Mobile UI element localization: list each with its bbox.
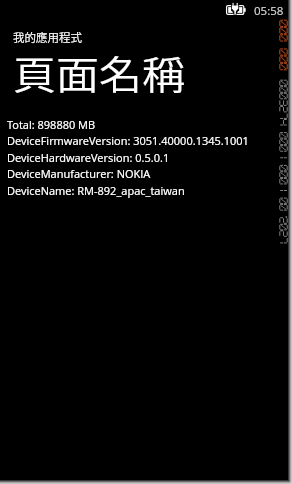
staticText: 頁面名稱 — [13, 44, 185, 100]
staticText: 05:58 — [254, 3, 284, 19]
staticText: Total: 898880 MB — [7, 117, 96, 132]
staticText: DeviceManufacturer: NOKIA — [7, 166, 151, 181]
staticText: DeviceFirmwareVersion: 3051.40000.1345.1… — [7, 133, 249, 148]
other: Battery charging — [225, 2, 247, 16]
staticText: 我的應用程式 — [13, 29, 82, 46]
staticText: DeviceHardwareVersion: 0.5.0.1 — [7, 150, 170, 165]
staticText: DeviceName: RM-892_apac_taiwan — [7, 183, 185, 198]
